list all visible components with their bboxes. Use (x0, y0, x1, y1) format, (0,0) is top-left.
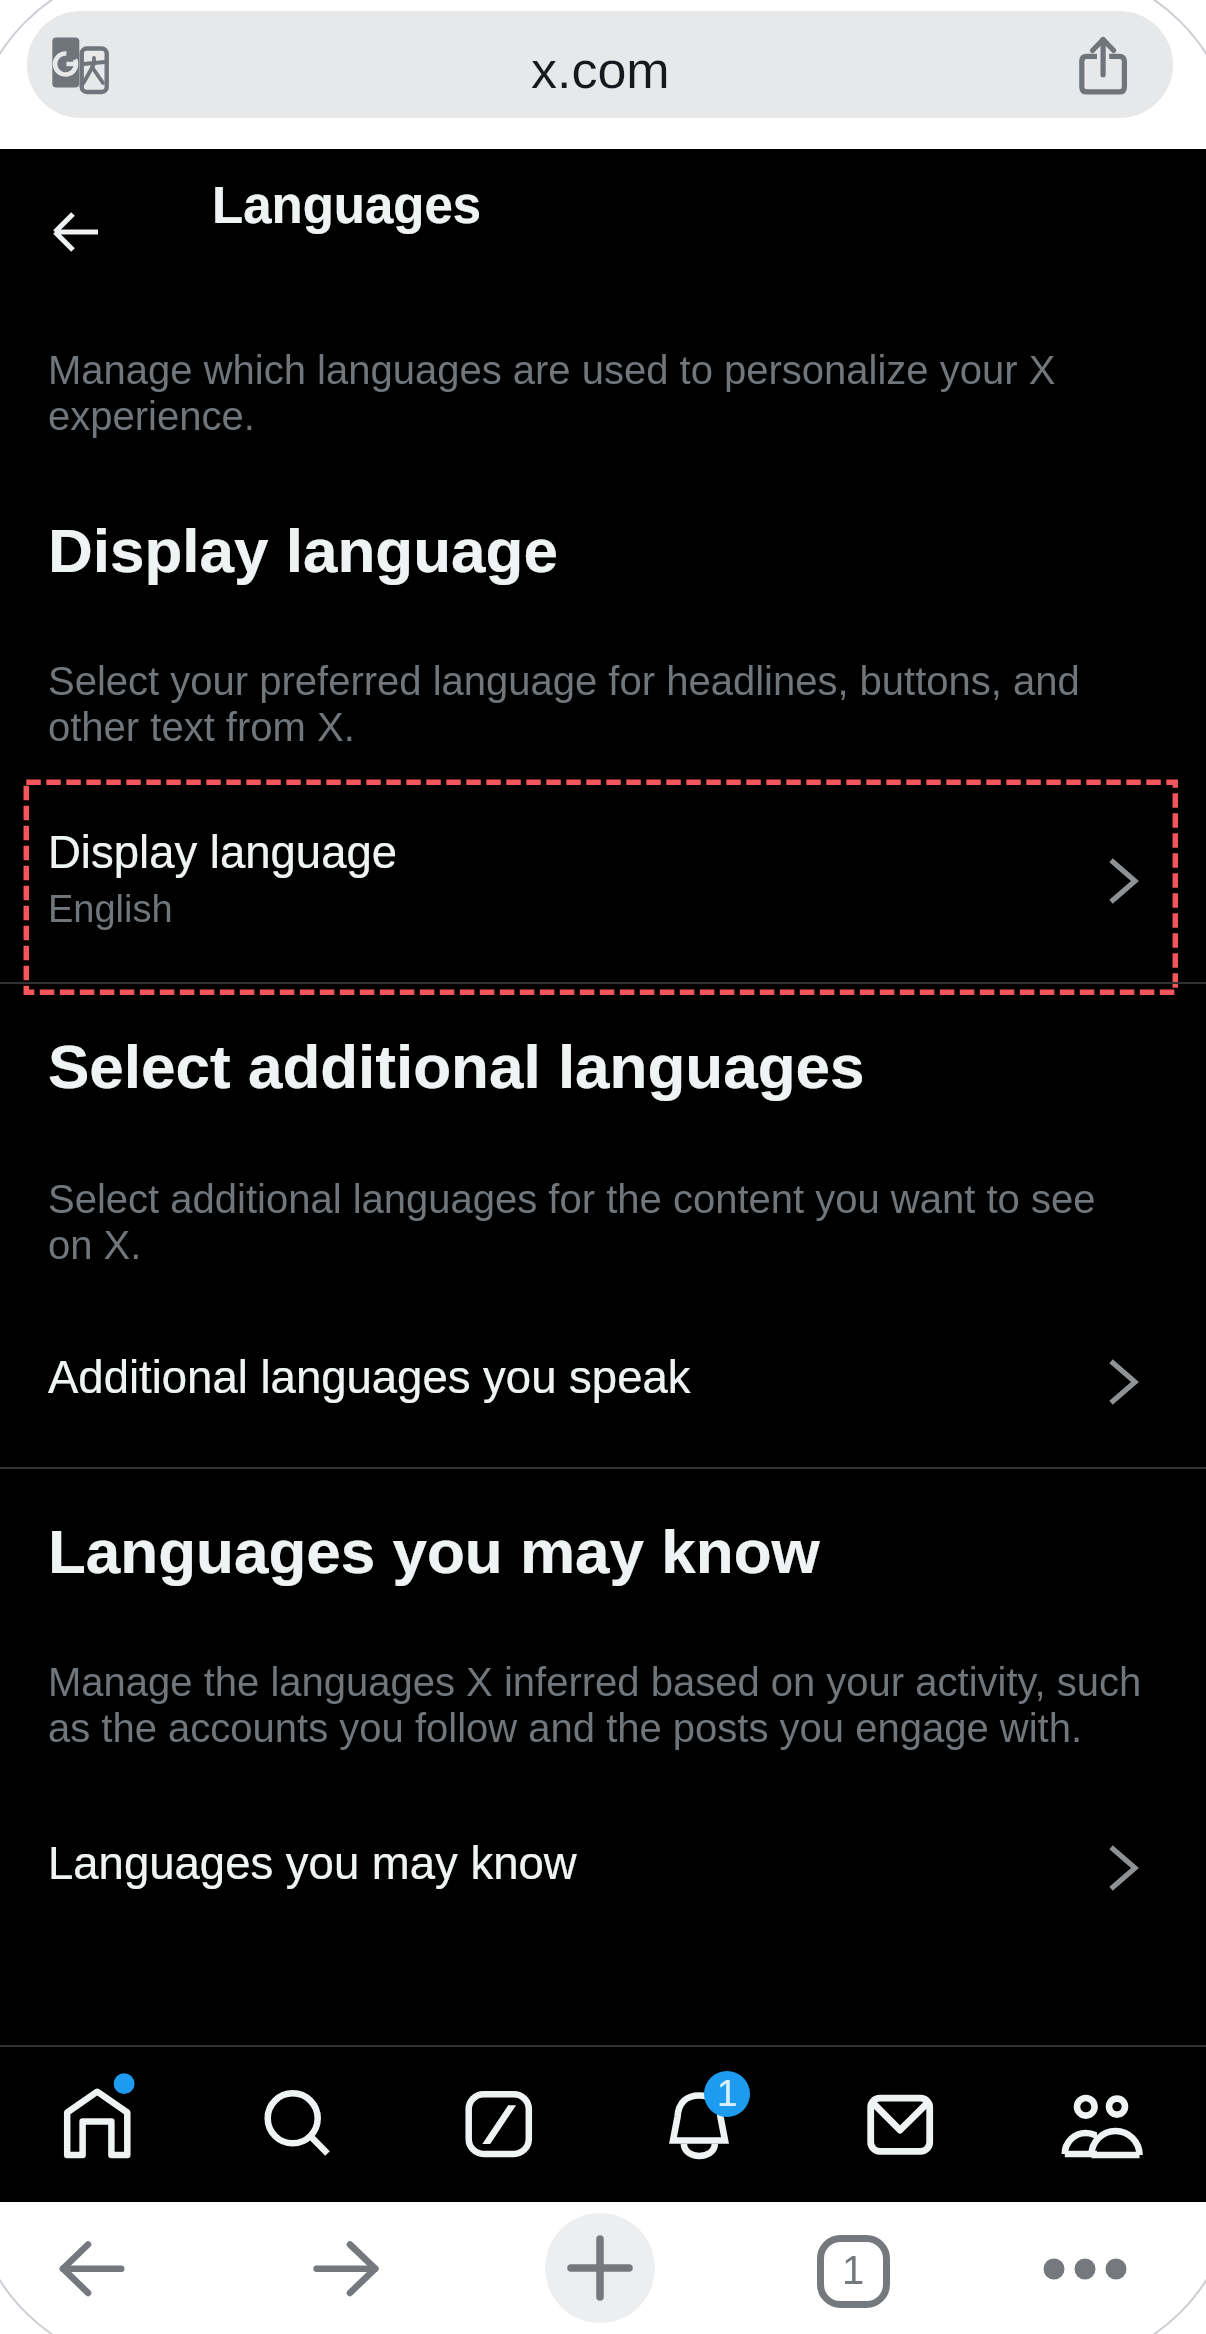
button[interactable]: Messages (799, 2047, 1000, 2202)
staticText: Languages (212, 177, 482, 234)
button[interactable]: More (1035, 2219, 1135, 2319)
button[interactable]: Back (40, 195, 112, 267)
staticText: Select additional languages (48, 1032, 1158, 1101)
staticText: Languages you may know (48, 1838, 577, 1889)
button[interactable]: Tabs (817, 2235, 890, 2308)
button[interactable]: Address bar (27, 11, 1173, 118)
staticText: Display language (48, 516, 1158, 585)
staticText: English (48, 888, 173, 930)
staticText: Manage which languages are used to perso… (48, 348, 1146, 438)
staticText: 1 (842, 2248, 865, 2293)
button[interactable]: Display language (0, 782, 1206, 991)
staticText: Display language (48, 827, 398, 878)
staticText: Languages you may know (48, 1517, 1158, 1586)
button[interactable]: Forward (296, 2219, 396, 2319)
staticText: Additional languages you speak (48, 1352, 691, 1403)
staticText: Select additional languages for the cont… (48, 1177, 1146, 1267)
button[interactable]: Search (196, 2047, 397, 2202)
button[interactable]: Back (42, 2219, 142, 2319)
button[interactable]: Share (1072, 30, 1134, 92)
button[interactable]: Grok (397, 2047, 598, 2202)
button[interactable]: Home (0, 2047, 196, 2202)
staticText: 1 (717, 2073, 738, 2114)
button[interactable]: Additional languages you speak (0, 1320, 1206, 1467)
staticText: x.com (531, 41, 670, 99)
button[interactable]: Translate (50, 36, 112, 98)
button[interactable]: New tab (545, 2213, 655, 2323)
button[interactable]: Communities (1000, 2047, 1201, 2202)
button[interactable]: Languages you may know (0, 1806, 1206, 1953)
staticText: Select your preferred language for headl… (48, 659, 1146, 749)
button[interactable]: Notifications (598, 2047, 799, 2202)
staticText: Manage the languages X inferred based on… (48, 1660, 1146, 1750)
